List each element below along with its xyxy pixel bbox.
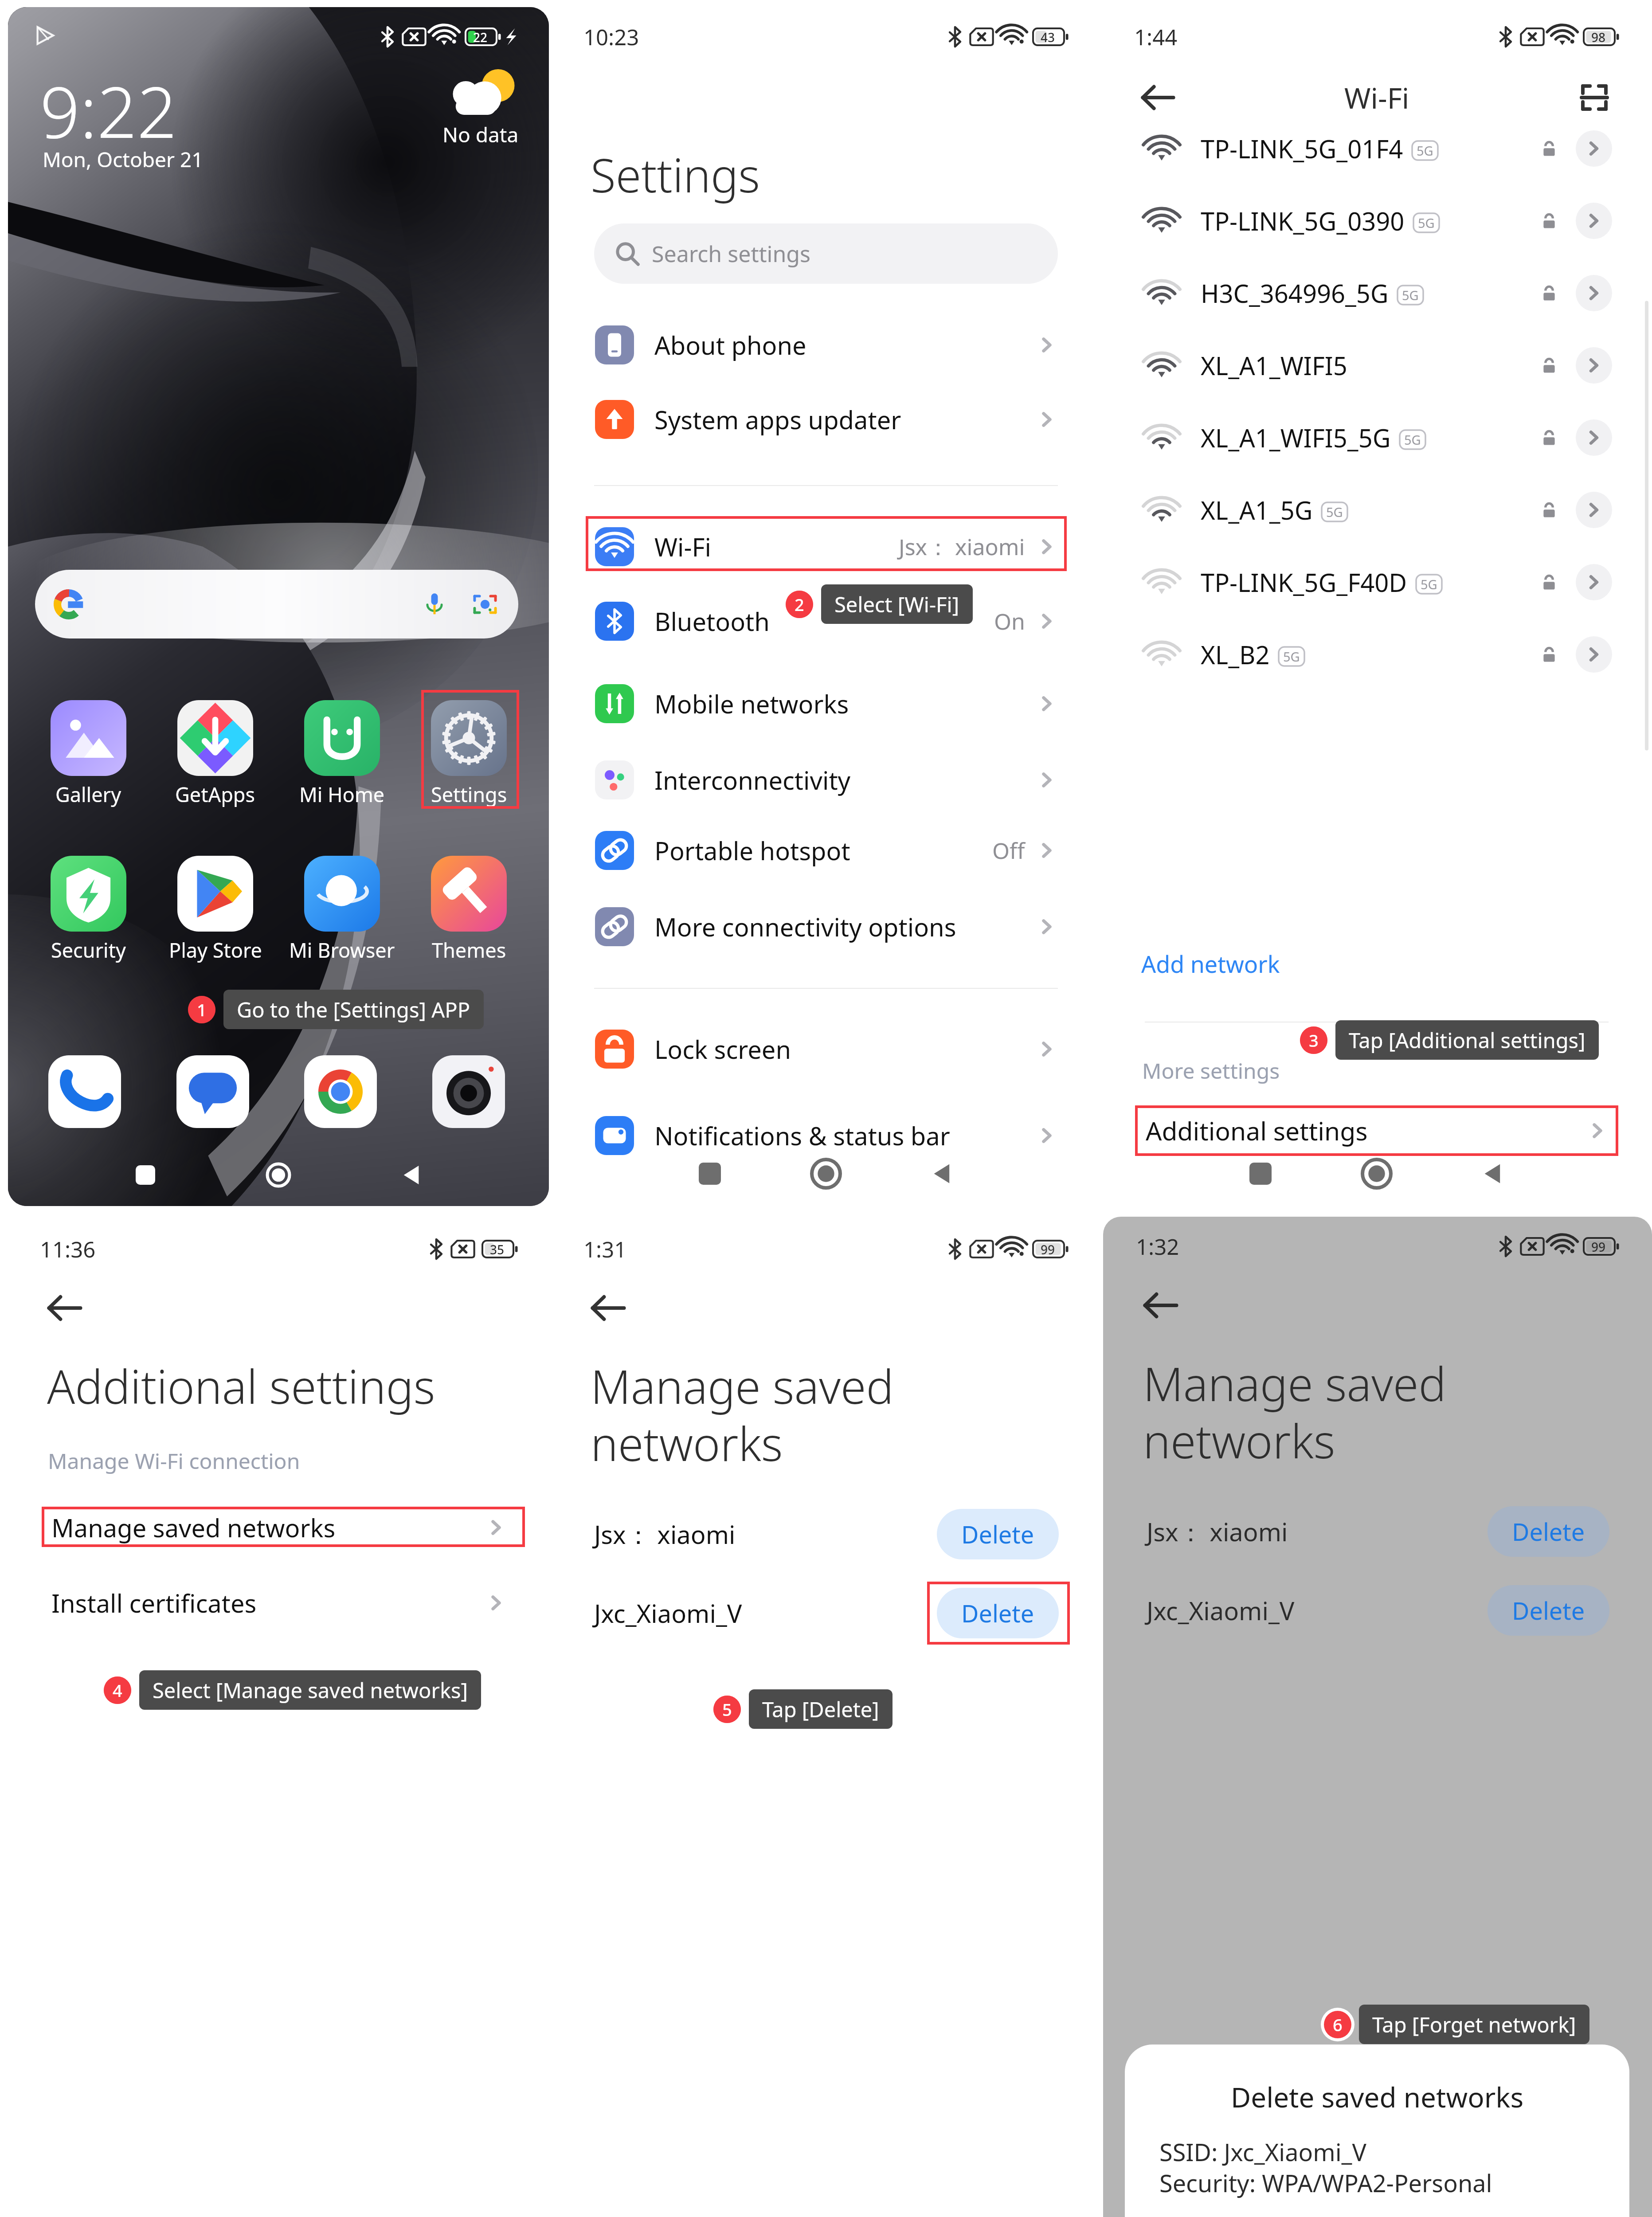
button[interactable]: Network details — [1576, 347, 1612, 384]
staticText: TP-LINK_5G_01F4 — [1201, 132, 1403, 165]
button[interactable]: Network details — [1576, 564, 1612, 600]
button[interactable]: Phone — [48, 1055, 121, 1128]
staticText: 10:23 — [583, 22, 639, 52]
button[interactable]: Recents — [1234, 1147, 1287, 1200]
button[interactable]: Mi Browser — [304, 856, 380, 932]
button[interactable]: Themes — [431, 856, 507, 932]
button[interactable]: XL_A1_WIFI5 — [1101, 329, 1652, 401]
button[interactable]: Settings — [431, 700, 507, 776]
staticText: TP-LINK_5G_0390 — [1201, 204, 1405, 238]
button[interactable]: Manage saved networks — [7, 1508, 551, 1547]
button[interactable]: Portable hotspot — [551, 814, 1101, 887]
button[interactable]: Lock screen — [551, 1013, 1101, 1085]
button[interactable]: Delete — [937, 1509, 1059, 1559]
button[interactable]: TP-LINK_5G_F40D — [1101, 546, 1652, 618]
staticText: GetApps — [175, 781, 255, 808]
staticText: Tap [Additional settings] — [1349, 1026, 1585, 1054]
staticText: XL_A1_5G — [1201, 493, 1313, 527]
button[interactable]: Network details — [1576, 419, 1612, 456]
staticText: 5G — [1404, 431, 1421, 448]
staticText: Jsx： xiaomi — [899, 532, 1025, 562]
staticText: 99 — [1041, 1241, 1055, 1258]
button[interactable]: Play Store — [177, 856, 253, 932]
staticText: Jsx： xiaomi — [1147, 1515, 1288, 1548]
button[interactable]: Back — [916, 1147, 969, 1200]
button[interactable]: XL_A1_WIFI5_5G — [1101, 402, 1652, 474]
button[interactable]: Additional settings — [1101, 1105, 1652, 1156]
staticText: Manage Wi-Fi connection — [48, 1446, 300, 1475]
staticText: 1:44 — [1134, 22, 1178, 52]
staticText: XL_A1_WIFI5 — [1201, 349, 1347, 382]
button[interactable]: Network details — [1576, 130, 1612, 167]
button[interactable]: Chrome — [304, 1055, 377, 1128]
button[interactable]: About phone — [551, 309, 1101, 381]
button[interactable]: Network details — [1576, 203, 1612, 239]
button[interactable]: Notifications & status bar — [551, 1099, 1101, 1172]
staticText: On — [994, 606, 1025, 636]
button[interactable]: Delete — [937, 1588, 1059, 1638]
staticText: Delete — [1512, 1594, 1585, 1627]
button[interactable]: Back — [588, 1288, 629, 1328]
button[interactable]: TP-LINK_5G_01F4 — [1101, 113, 1652, 184]
button[interactable]: Back — [1140, 1285, 1181, 1326]
button[interactable]: Back — [44, 1288, 85, 1328]
button[interactable]: Back — [1466, 1147, 1519, 1200]
staticText: Interconnectivity — [654, 763, 851, 797]
staticText: Delete — [961, 1518, 1034, 1551]
staticText: Search settings — [652, 239, 810, 269]
button[interactable]: Mobile networks — [551, 667, 1101, 740]
button[interactable]: Home — [1350, 1147, 1403, 1200]
button[interactable]: Security — [51, 856, 126, 932]
button[interactable]: Messages — [176, 1055, 249, 1128]
staticText: 5G — [1418, 214, 1435, 231]
staticText: 5G — [1283, 648, 1300, 665]
button[interactable]: Network details — [1576, 275, 1612, 311]
button[interactable]: TP-LINK_5G_0390 — [1101, 185, 1652, 257]
button[interactable]: Add network — [1141, 948, 1280, 979]
button[interactable]: Back — [1138, 77, 1178, 118]
button[interactable]: Install certificates — [7, 1583, 551, 1622]
staticText: 5G — [1421, 576, 1437, 593]
staticText: More connectivity options — [654, 910, 956, 944]
button[interactable]: Mi Home — [304, 700, 380, 776]
button[interactable]: GetApps — [177, 700, 253, 776]
button[interactable]: Google search — [35, 570, 518, 638]
button[interactable]: Home — [799, 1147, 853, 1200]
staticText: Mi Browser — [289, 936, 395, 964]
button[interactable]: Scan QR code — [1574, 77, 1615, 118]
button[interactable]: Network details — [1576, 636, 1612, 673]
button[interactable]: Back — [385, 1148, 438, 1202]
button[interactable]: Camera — [432, 1055, 505, 1128]
staticText: XL_B2 — [1201, 638, 1270, 671]
staticText: Select [Manage saved networks] — [153, 1676, 468, 1704]
button[interactable]: Recents — [683, 1147, 736, 1200]
staticText: 99 — [1591, 1238, 1606, 1255]
staticText: 22 — [473, 29, 488, 46]
button[interactable]: Home — [252, 1148, 305, 1202]
button[interactable]: XL_A1_5G — [1101, 474, 1652, 546]
button[interactable]: Delete — [1488, 1506, 1609, 1557]
button[interactable]: System apps updater — [551, 383, 1101, 456]
button[interactable]: Wi-Fi — [551, 510, 1101, 583]
button[interactable]: Bluetooth — [551, 585, 1101, 658]
button[interactable]: H3C_364996_5G — [1101, 257, 1652, 329]
staticText: Manage saved networks — [51, 1511, 336, 1544]
button[interactable]: Delete — [1488, 1585, 1609, 1636]
staticText: Manage saved networks — [1143, 1352, 1446, 1472]
staticText: Security: WPA/WPA2-Personal — [1159, 2166, 1492, 2199]
staticText: System apps updater — [654, 403, 901, 436]
staticText: Install certificates — [51, 1586, 257, 1620]
button[interactable]: Interconnectivity — [551, 744, 1101, 816]
button[interactable]: Gallery — [51, 700, 126, 776]
staticText: 35 — [490, 1241, 505, 1258]
staticText: TP-LINK_5G_F40D — [1201, 565, 1407, 599]
button[interactable]: Search settings — [594, 223, 1058, 284]
staticText: 1:31 — [583, 1234, 627, 1264]
staticText: Mon, October 21 — [43, 145, 204, 173]
button[interactable]: Recents — [119, 1148, 172, 1202]
staticText: Mi Home — [299, 781, 385, 808]
staticText: 98 — [1591, 29, 1606, 46]
button[interactable]: More connectivity options — [551, 890, 1101, 963]
button[interactable]: Network details — [1576, 492, 1612, 528]
button[interactable]: XL_B2 — [1101, 619, 1652, 690]
